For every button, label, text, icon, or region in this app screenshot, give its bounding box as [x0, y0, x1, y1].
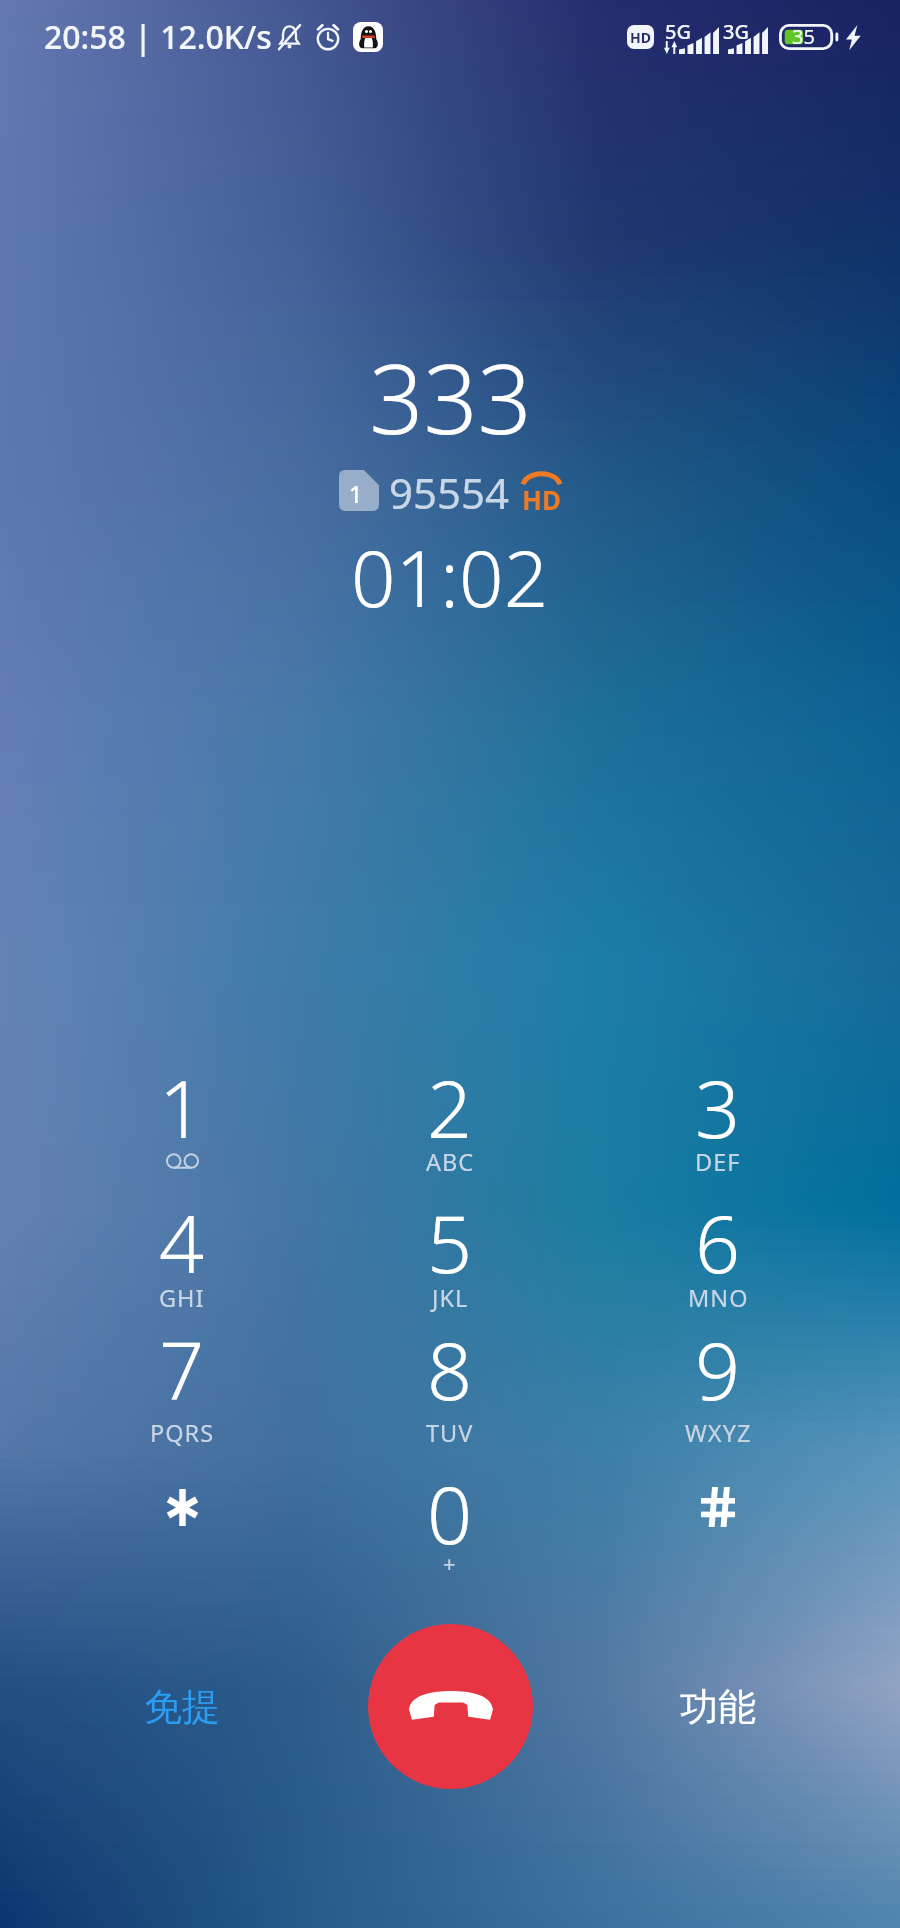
staticText: 5G [665, 18, 691, 45]
button[interactable]: 1 [48, 1048, 316, 1178]
button[interactable]: 5 [316, 1183, 584, 1313]
staticText: WXYZ [685, 1417, 752, 1449]
staticText: 1 [349, 478, 363, 509]
button[interactable]: 2 [316, 1048, 584, 1178]
button[interactable]: 0 [316, 1454, 584, 1584]
button[interactable]: 3 [584, 1048, 852, 1178]
staticText: ABC [426, 1146, 475, 1178]
staticText: GHI [159, 1282, 205, 1314]
staticText: 2 [427, 1054, 473, 1157]
staticText: 3G [723, 18, 749, 45]
staticText: 8 [427, 1316, 473, 1419]
staticText: HD [630, 28, 651, 47]
button[interactable]: Pound [584, 1454, 852, 1584]
button[interactable]: End call [368, 1624, 533, 1789]
staticText: 1 [159, 1054, 205, 1157]
staticText: PQRS [150, 1417, 215, 1449]
staticText: + [443, 1548, 457, 1578]
staticText: 3 [695, 1054, 741, 1157]
button[interactable]: 4 [48, 1183, 316, 1313]
staticText: 20:58 | 12.0K/s [44, 15, 272, 59]
button[interactable]: 6 [584, 1183, 852, 1313]
staticText: 7 [159, 1316, 205, 1419]
staticText: 4 [159, 1189, 205, 1292]
button[interactable]: 7 [48, 1310, 316, 1440]
button[interactable]: 9 [584, 1310, 852, 1440]
staticText: 95554 [389, 464, 510, 516]
staticText: 功能 [680, 1683, 756, 1731]
staticText: 0 [427, 1460, 473, 1563]
staticText: TUV [426, 1417, 474, 1449]
staticText: 9 [695, 1316, 741, 1419]
staticText: 35 [792, 23, 815, 49]
staticText: HD [522, 482, 561, 517]
staticText: JKL [432, 1282, 469, 1314]
button[interactable]: 免提 [118, 1665, 246, 1749]
staticText: 5 [427, 1189, 473, 1292]
staticText: 01:02 [351, 524, 549, 630]
staticText: MNO [688, 1282, 749, 1314]
staticText: 333 [369, 332, 532, 461]
button[interactable]: 功能 [654, 1665, 782, 1749]
staticText: 免提 [144, 1683, 220, 1731]
staticText: DEF [695, 1146, 741, 1178]
button[interactable]: 8 [316, 1310, 584, 1440]
button[interactable]: Star [48, 1454, 316, 1584]
staticText: 6 [695, 1189, 741, 1292]
